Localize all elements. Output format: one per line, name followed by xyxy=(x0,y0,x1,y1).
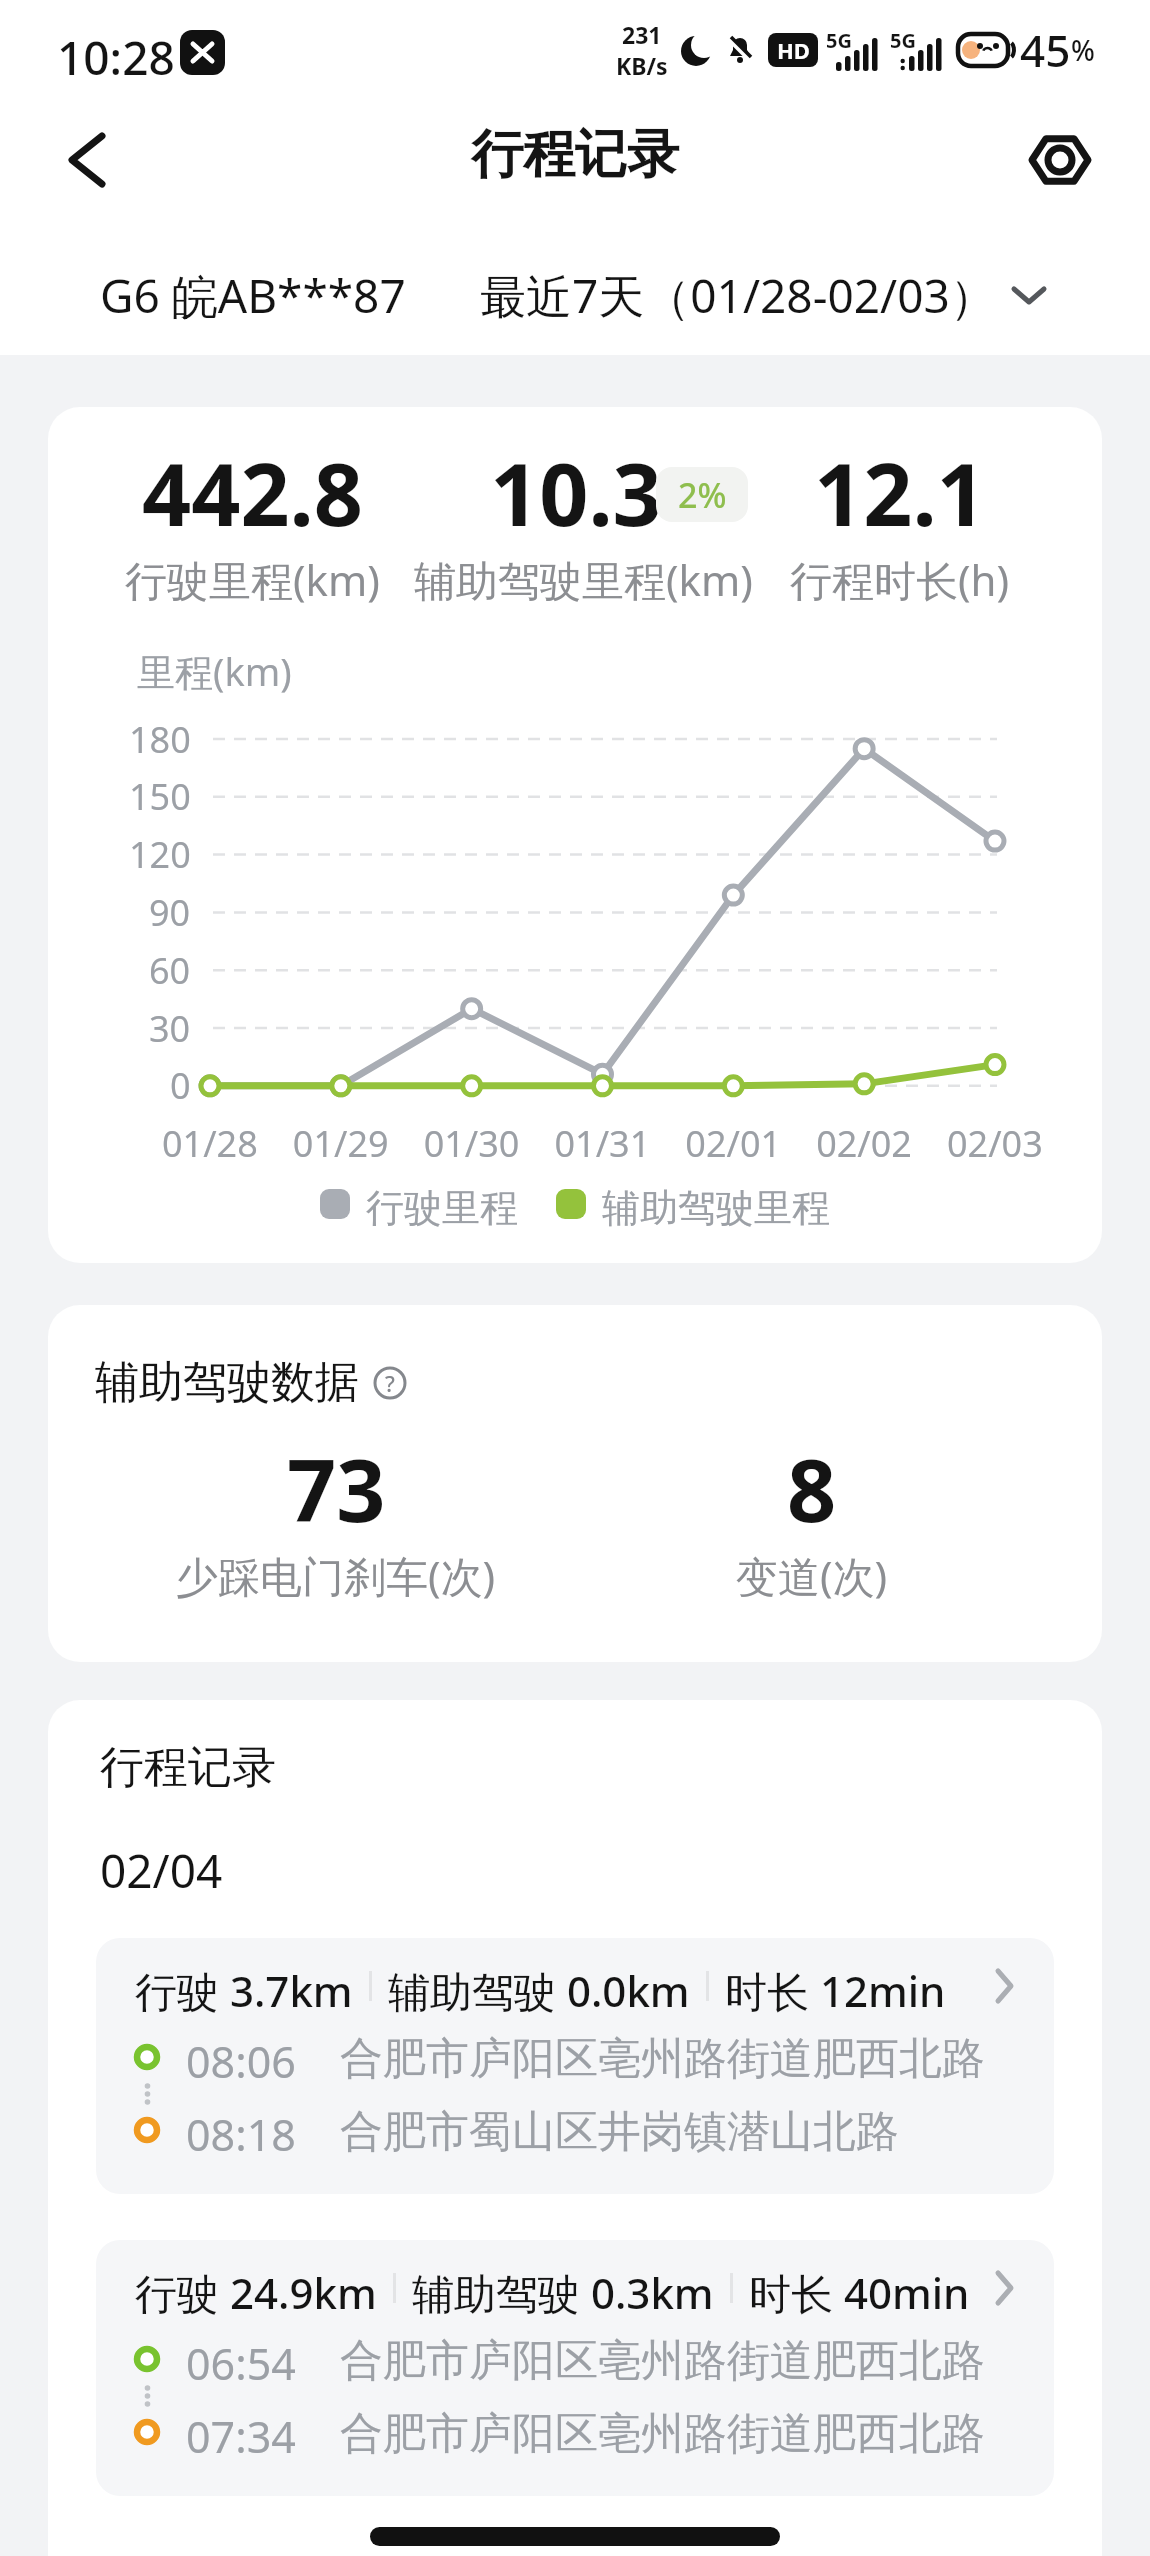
staticText: 辅助驾驶数据 xyxy=(95,1355,359,1410)
staticText: 行程记录 xyxy=(471,122,679,188)
staticText: 5G xyxy=(826,27,852,54)
staticText: 08:06 xyxy=(186,2032,296,2082)
staticText: 06:54 xyxy=(186,2334,296,2384)
staticText: 变道(次) xyxy=(736,1547,888,1604)
staticText: 10:28 xyxy=(57,26,175,89)
button[interactable] xyxy=(1030,130,1090,190)
staticText: 辅助驾驶里程 xyxy=(602,1184,830,1224)
staticText: 少踩电门刹车(次) xyxy=(176,1547,496,1604)
staticText: 12.1 xyxy=(814,434,986,551)
button[interactable]: 最近7天（01/28-02/03） xyxy=(480,264,1048,327)
staticText: 辅助驾驶里程(km) xyxy=(414,551,738,608)
staticText: 行驶里程 xyxy=(366,1184,518,1224)
staticText: G6 皖AB***87 xyxy=(100,264,406,327)
staticText: 10.3 xyxy=(490,434,662,551)
staticText: 442.8 xyxy=(142,434,363,551)
staticText: 2% xyxy=(678,472,727,518)
button[interactable]: 行驶 24.9km xyxy=(96,2240,1054,2496)
button[interactable] xyxy=(50,126,120,196)
staticText: % xyxy=(1071,31,1095,69)
staticText: 合肥市庐阳区亳州路街道肥西北路 xyxy=(340,2032,985,2082)
staticText: 辅助驾驶 0.0km xyxy=(388,1962,690,2010)
staticText: 73 xyxy=(287,1430,386,1547)
staticText: ? xyxy=(385,1368,395,1398)
staticText: 07:34 xyxy=(186,2407,296,2457)
staticText: 02/04 xyxy=(100,1839,223,1902)
staticText: 里程(km) xyxy=(137,645,292,697)
staticText: 45 xyxy=(1020,20,1071,80)
staticText: KB/s xyxy=(616,50,668,81)
staticText: 行程记录 xyxy=(100,1740,276,1795)
staticText: 8 xyxy=(787,1430,837,1547)
staticText: 合肥市庐阳区亳州路街道肥西北路 xyxy=(340,2407,985,2457)
staticText: 行驶 3.7km xyxy=(135,1962,353,2010)
staticText: 时长 40min xyxy=(749,2264,970,2312)
staticText: 08:18 xyxy=(186,2105,296,2155)
staticText: 最近7天（01/28-02/03） xyxy=(480,264,996,327)
staticText: 时长 12min xyxy=(725,1962,946,2010)
staticText: 行驶里程(km) xyxy=(125,551,380,608)
button[interactable]: 行驶 3.7km xyxy=(96,1938,1054,2194)
staticText: 行程时长(h) xyxy=(790,551,1010,608)
staticText: 231 xyxy=(622,19,662,50)
staticText: 行驶 24.9km xyxy=(135,2264,377,2312)
staticText: 合肥市庐阳区亳州路街道肥西北路 xyxy=(340,2334,985,2384)
staticText: 5G xyxy=(890,27,916,54)
staticText: 合肥市蜀山区井岗镇潜山北路 xyxy=(340,2105,899,2155)
staticText: HD xyxy=(777,35,810,65)
staticText: 辅助驾驶 0.3km xyxy=(412,2264,714,2312)
